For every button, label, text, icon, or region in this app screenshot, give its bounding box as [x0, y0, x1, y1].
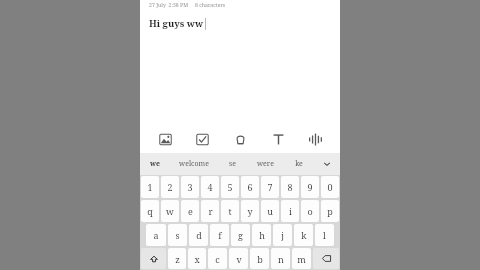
- staticText: 1: [147, 181, 153, 193]
- button[interactable]: 2: [161, 176, 179, 198]
- staticText: c: [215, 253, 220, 265]
- button[interactable]: d: [189, 224, 208, 246]
- button[interactable]: ke: [284, 153, 314, 175]
- button[interactable]: l: [315, 224, 334, 246]
- button[interactable]: u: [261, 200, 279, 222]
- staticText: d: [196, 229, 202, 241]
- button[interactable]: 3: [181, 176, 199, 198]
- button[interactable]: Insert image: [152, 126, 178, 152]
- staticText: 9: [307, 181, 313, 193]
- staticText: s: [175, 229, 180, 241]
- button[interactable]: Drawing: [227, 126, 253, 152]
- staticText: r: [208, 205, 213, 217]
- button[interactable]: 4: [201, 176, 219, 198]
- staticText: 8 characters: [195, 1, 226, 8]
- button[interactable]: 0: [321, 176, 339, 198]
- staticText: 7: [267, 181, 273, 193]
- staticText: b: [257, 253, 263, 265]
- staticText: k: [301, 229, 307, 241]
- button[interactable]: b: [250, 248, 269, 269]
- button[interactable]: we: [140, 153, 170, 175]
- staticText: 2: [167, 181, 173, 193]
- staticText: 0: [327, 181, 333, 193]
- button[interactable]: 7: [261, 176, 279, 198]
- button[interactable]: 1: [141, 176, 159, 198]
- button[interactable]: y: [241, 200, 259, 222]
- button[interactable]: Shift: [141, 248, 166, 269]
- staticText: f: [218, 229, 222, 241]
- staticText: m: [297, 253, 306, 265]
- button[interactable]: Expand suggestions: [314, 153, 340, 175]
- button[interactable]: h: [252, 224, 271, 246]
- staticText: ke: [295, 159, 303, 169]
- staticText: i: [289, 205, 292, 217]
- button[interactable]: g: [231, 224, 250, 246]
- staticText: 8: [287, 181, 293, 193]
- staticText: t: [228, 205, 232, 217]
- button[interactable]: x: [188, 248, 206, 269]
- button[interactable]: 6: [241, 176, 259, 198]
- button[interactable]: Voice recording: [302, 126, 328, 152]
- button[interactable]: Backspace: [313, 248, 339, 269]
- button[interactable]: Text style: [265, 126, 291, 152]
- staticText: 3: [187, 181, 193, 193]
- button[interactable]: welcome: [170, 153, 217, 175]
- button[interactable]: e: [181, 200, 199, 222]
- staticText: welcome: [179, 159, 209, 169]
- button[interactable]: r: [201, 200, 219, 222]
- button[interactable]: were: [247, 153, 284, 175]
- staticText: se: [229, 159, 236, 169]
- staticText: h: [259, 229, 265, 241]
- staticText: g: [238, 229, 243, 241]
- staticText: z: [175, 253, 180, 265]
- button[interactable]: c: [208, 248, 227, 269]
- staticText: n: [278, 253, 284, 265]
- button[interactable]: s: [168, 224, 187, 246]
- button[interactable]: 5: [221, 176, 239, 198]
- button[interactable]: i: [281, 200, 299, 222]
- staticText: p: [327, 205, 333, 217]
- button[interactable]: f: [210, 224, 229, 246]
- staticText: l: [323, 229, 326, 241]
- staticText: u: [267, 205, 273, 217]
- button[interactable]: w: [161, 200, 179, 222]
- button[interactable]: se: [217, 153, 247, 175]
- staticText: Hi guys ww: [149, 17, 204, 30]
- button[interactable]: t: [221, 200, 239, 222]
- staticText: 6: [247, 181, 253, 193]
- button[interactable]: v: [229, 248, 248, 269]
- button[interactable]: 9: [301, 176, 319, 198]
- button[interactable]: o: [301, 200, 319, 222]
- staticText: j: [281, 229, 284, 241]
- staticText: x: [194, 253, 200, 265]
- button[interactable]: q: [141, 200, 159, 222]
- staticText: a: [153, 229, 159, 241]
- button[interactable]: j: [273, 224, 292, 246]
- staticText: o: [307, 205, 313, 217]
- staticText: e: [188, 205, 193, 217]
- staticText: y: [247, 205, 253, 217]
- staticText: 27 July 2:58 PM: [149, 1, 189, 8]
- button[interactable]: Checklist: [189, 126, 215, 152]
- button[interactable]: 8: [281, 176, 299, 198]
- staticText: q: [147, 205, 153, 217]
- button[interactable]: n: [271, 248, 290, 269]
- staticText: w: [166, 205, 174, 217]
- staticText: were: [257, 159, 274, 169]
- staticText: 4: [207, 181, 213, 193]
- staticText: we: [150, 159, 160, 169]
- button[interactable]: k: [294, 224, 313, 246]
- staticText: 5: [227, 181, 233, 193]
- button[interactable]: a: [146, 224, 166, 246]
- button[interactable]: m: [292, 248, 311, 269]
- staticText: v: [236, 253, 242, 265]
- button[interactable]: p: [321, 200, 339, 222]
- button[interactable]: z: [168, 248, 186, 269]
